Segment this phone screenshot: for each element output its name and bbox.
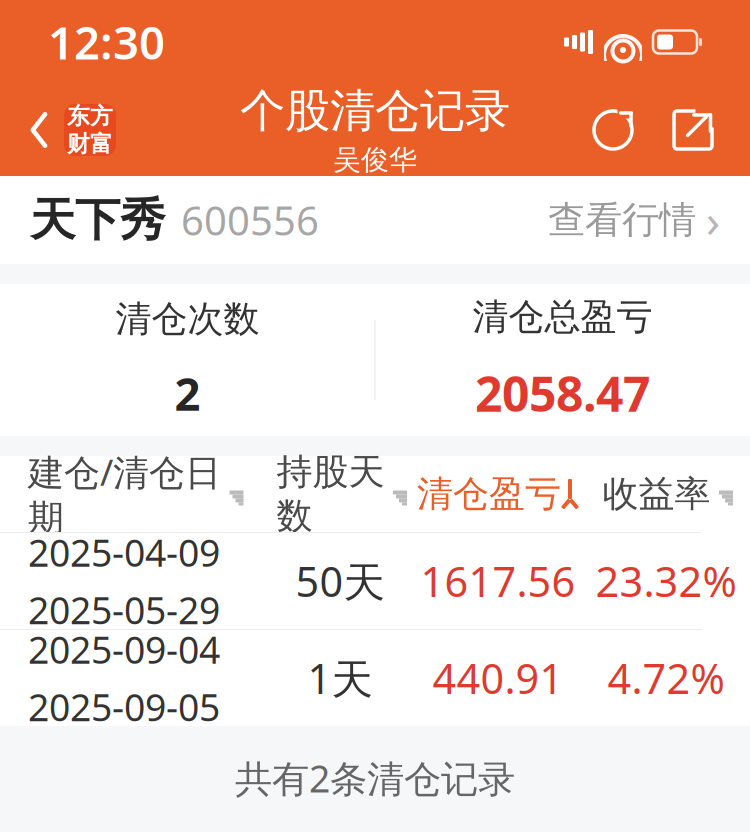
staticText: 清仓次数 — [115, 297, 259, 341]
staticText: 2 — [174, 363, 200, 423]
staticText: 查看行情 — [548, 197, 696, 243]
staticText: 财富 — [67, 130, 113, 158]
staticText: › — [706, 190, 720, 250]
button[interactable]: 2025-09-04 — [0, 630, 750, 726]
staticText: 清仓总盈亏 — [472, 295, 652, 339]
staticText: 共有2条清仓记录 — [235, 753, 515, 803]
staticText: 4.72% — [607, 651, 724, 705]
button[interactable]: 刷新 — [586, 103, 640, 157]
staticText: 2025-09-05 — [28, 682, 220, 732]
staticText: 天下秀 — [30, 192, 165, 248]
staticText: 1天 — [307, 651, 372, 705]
button[interactable]: 清仓盈亏 — [417, 460, 579, 528]
button[interactable]: 2025-04-09 — [0, 533, 750, 629]
staticText: 1617.56 — [420, 554, 575, 608]
button[interactable]: 持股天数 — [276, 438, 403, 550]
staticText: 收益率 — [602, 472, 710, 516]
staticText: 600556 — [181, 193, 319, 246]
staticText: 清仓盈亏 — [417, 472, 561, 516]
staticText: 50天 — [295, 554, 384, 608]
button[interactable]: 返回 — [0, 96, 116, 164]
button[interactable]: 分享 — [666, 103, 720, 157]
staticText: 2025-05-29 — [28, 585, 220, 635]
staticText: 东方 — [67, 102, 113, 130]
staticText: 个股清仓记录 — [240, 83, 510, 139]
button[interactable]: 收益率 — [602, 460, 729, 528]
button[interactable]: 查看行情 — [548, 180, 720, 260]
staticText: 2058.47 — [475, 361, 650, 425]
staticText: 建仓/清仓日期 — [28, 448, 221, 540]
staticText: 440.91 — [432, 651, 563, 705]
staticText: 12:30 — [48, 12, 165, 72]
button[interactable]: 建仓/清仓日期 — [28, 436, 240, 552]
staticText: 持股天数 — [276, 450, 384, 538]
staticText: 吴俊华 — [333, 143, 417, 177]
staticText: 2025-04-09 — [28, 527, 220, 577]
staticText: 2025-09-04 — [28, 624, 220, 674]
staticText: 23.32% — [595, 554, 736, 608]
